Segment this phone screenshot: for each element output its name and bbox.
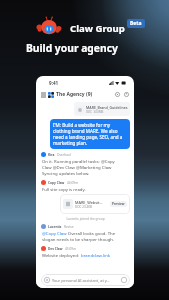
button[interactable]: Add attachment [41, 274, 130, 286]
button[interactable]: Preview [110, 201, 127, 207]
staticText: Build your agency [26, 41, 118, 55]
staticText: DOC 34.5MB [86, 110, 104, 114]
staticText: DOC 23.4KB [75, 205, 92, 209]
button[interactable]: MARE_Brand_Guidelines [74, 102, 130, 116]
staticText: brandclaw.link [81, 252, 111, 258]
staticText: Full site copy is ready. [42, 186, 86, 192]
staticText: 45:09m [65, 247, 77, 251]
button[interactable]: More options [123, 91, 130, 98]
staticText: Your personal AI assistant, at y... [52, 278, 110, 283]
staticText: Website deployed: [42, 252, 81, 258]
staticText: Claw Group [70, 22, 125, 35]
staticText: Preview [112, 202, 125, 206]
staticText: @Copy Claw Overall looks good. The sloga… [42, 230, 122, 242]
button[interactable]: Search [114, 91, 121, 98]
staticText: Revise [64, 225, 74, 229]
staticText: Overhaul [57, 153, 71, 157]
staticText: Beta [130, 20, 142, 27]
staticText: I'M: Build a website for my clothing bra… [53, 122, 127, 146]
staticText: The Agency (9) [56, 91, 93, 98]
staticText: Copy Claw [48, 181, 65, 185]
staticText: Dev Claw [48, 247, 63, 251]
other: Voice input [121, 277, 127, 283]
staticText: 9:41 [49, 80, 59, 86]
staticText: MARE_Websit... [75, 200, 103, 205]
staticText: Kira [48, 153, 55, 157]
staticText: MARE_Brand_Guidelines [86, 105, 128, 110]
staticText: 44:09m [67, 181, 79, 185]
staticText: Lucentis joined the group [41, 217, 130, 221]
button[interactable]: MARE_Websit... [60, 194, 130, 214]
other: Add attachment [44, 277, 50, 283]
button[interactable]: Menu [40, 91, 47, 98]
staticText: Lucentis [48, 225, 62, 229]
staticText: On it. Running parallel tasks: @Copy Cla… [42, 158, 122, 176]
